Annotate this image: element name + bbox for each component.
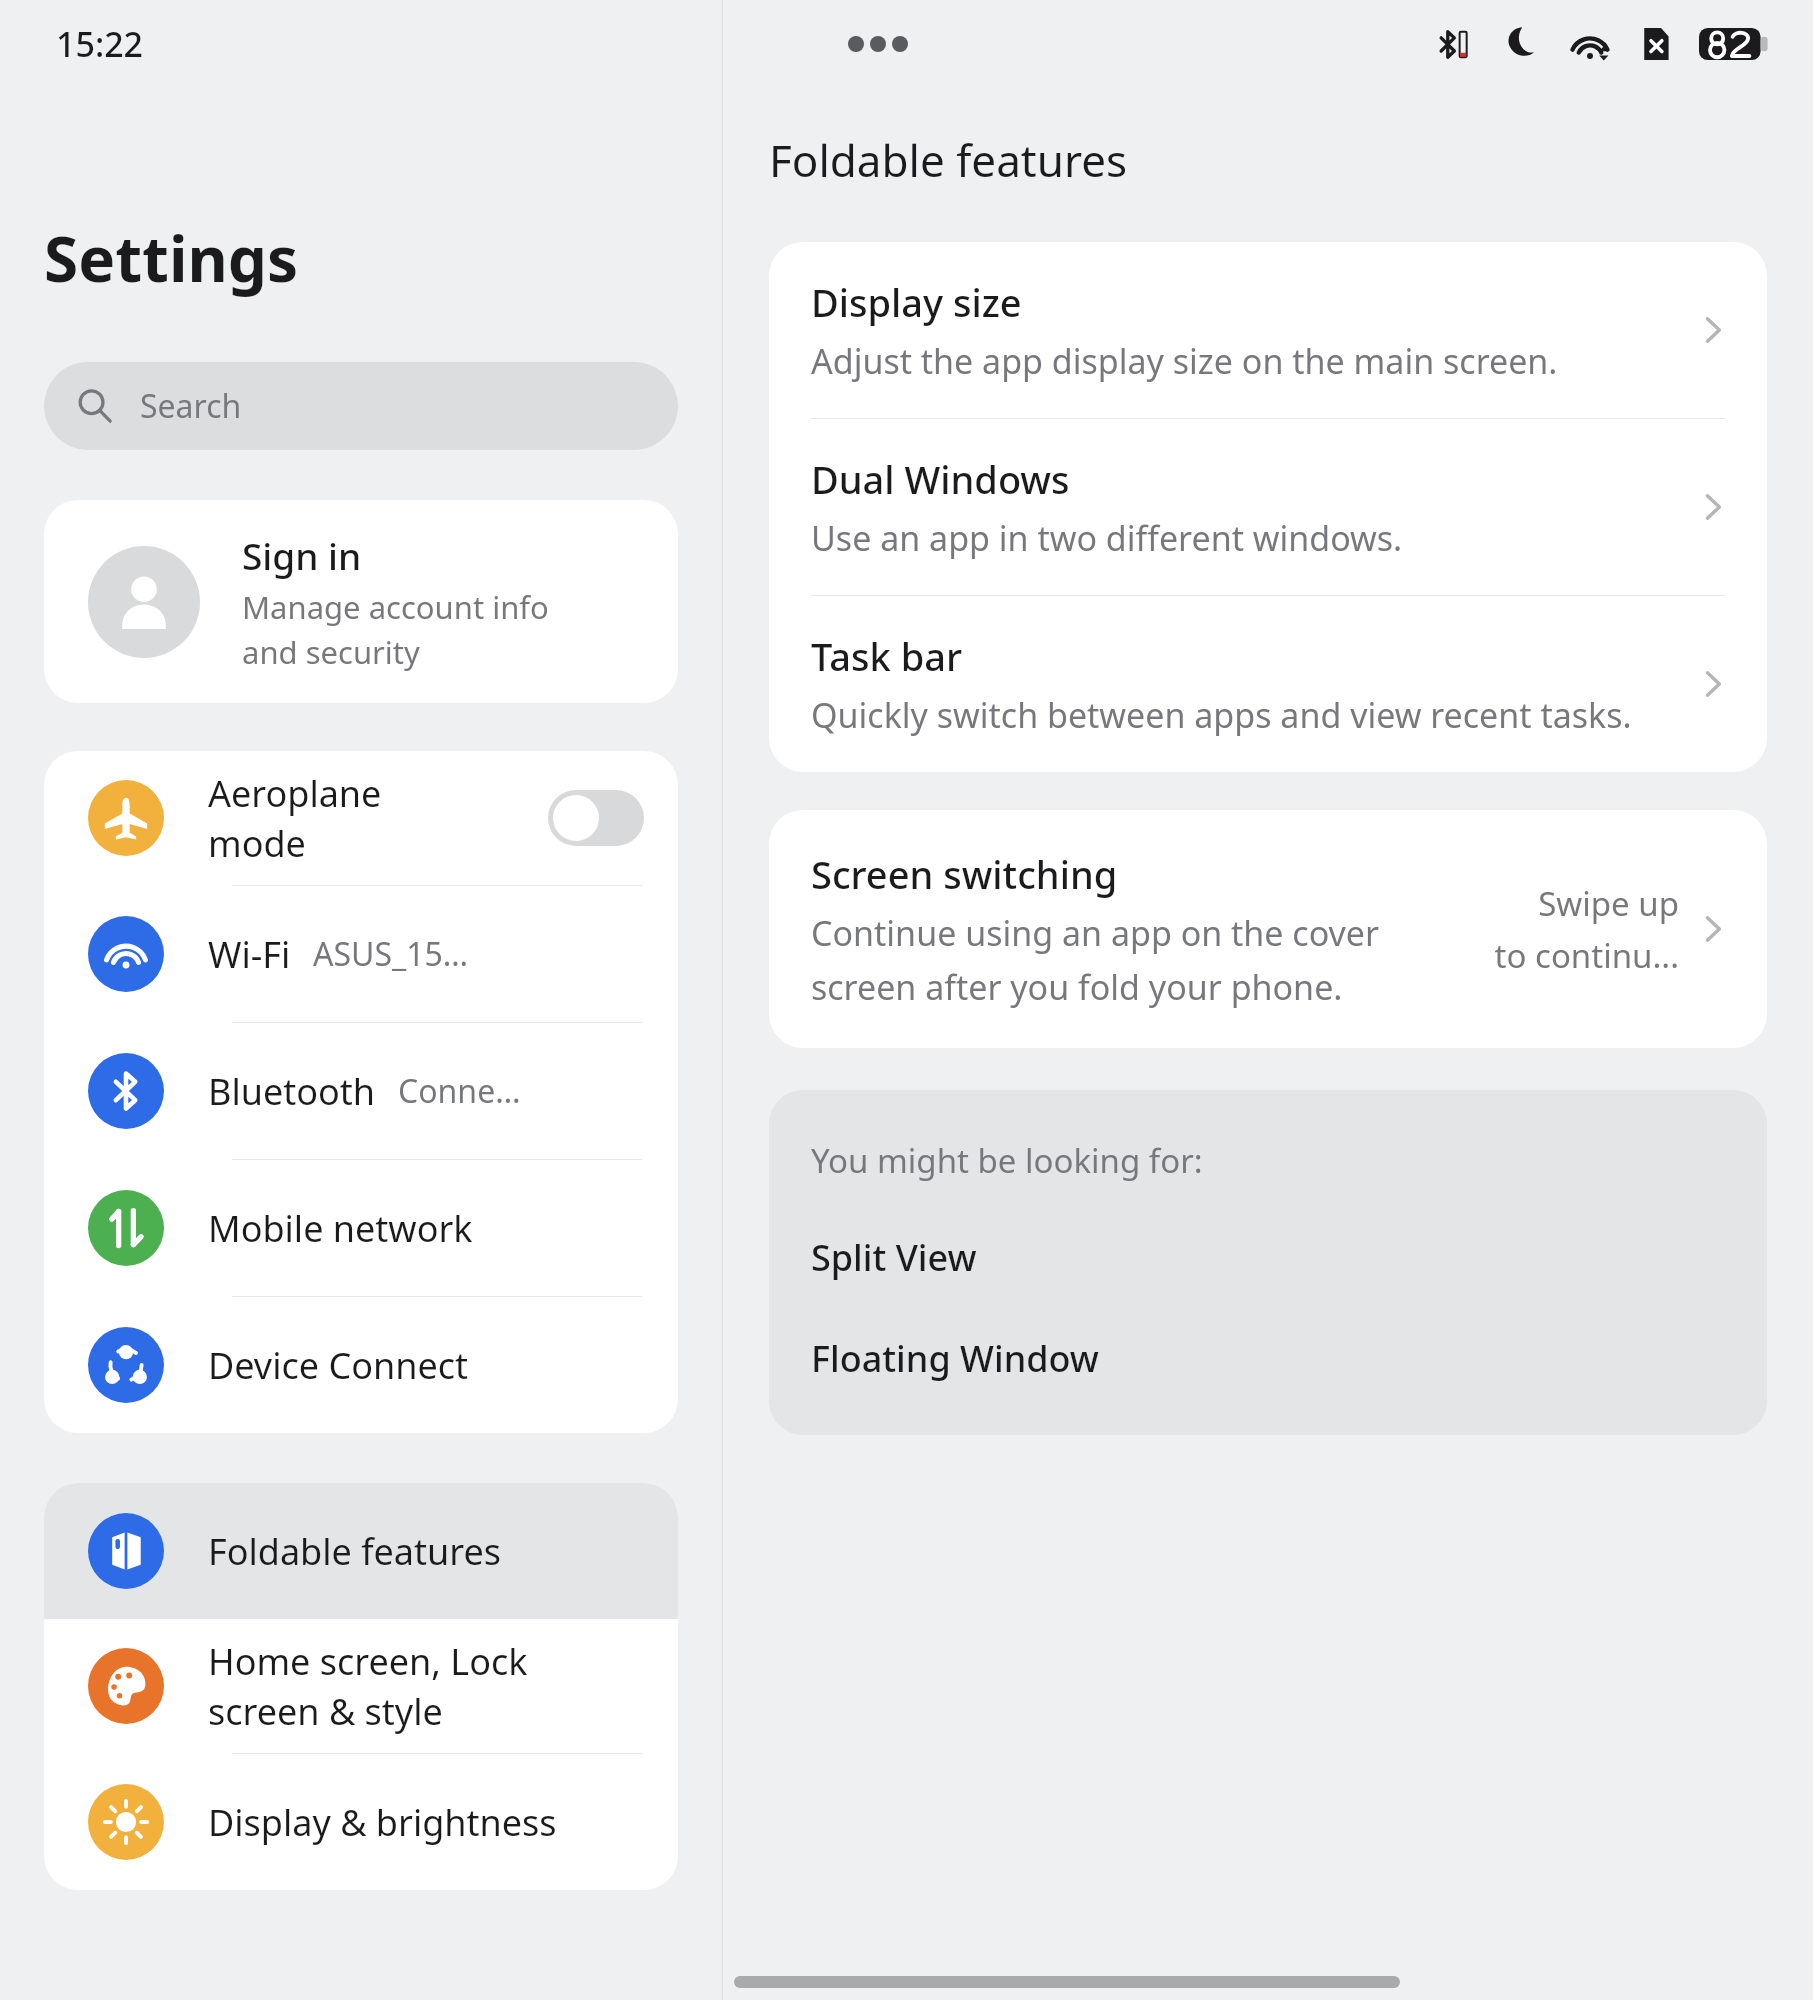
staticText: ASUS_159_WiFi7 [313,932,478,976]
button[interactable]: Floating Window [811,1334,1725,1383]
staticText: Foldable features [769,130,1128,190]
staticText: Quickly switch between apps and view rec… [811,692,1632,738]
button[interactable]: Display size [769,242,1767,418]
staticText: Display size [811,276,1022,328]
staticText: Search [140,384,242,428]
staticText: Wi-Fi [208,930,291,979]
staticText: Bluetooth [208,1067,376,1116]
staticText: 15:22 [56,21,144,67]
button[interactable]: Task bar [769,596,1767,772]
button[interactable]: Split View [811,1233,1725,1282]
staticText: Swipe up to continu... [1494,881,1679,977]
staticText: Display & brightness [208,1798,557,1847]
staticText: Adjust the app display size on the main … [811,338,1558,384]
staticText: Task bar [811,630,963,682]
button[interactable]: Display & brightness [44,1754,678,1890]
button[interactable]: Aeroplane mode [44,751,678,885]
button[interactable]: Mobile network [44,1160,678,1296]
staticText: Aeroplane mode [208,769,382,868]
button[interactable]: Search [44,362,678,450]
staticText: Manage account info and security [242,586,549,673]
button[interactable]: Screen switching [769,810,1767,1048]
staticText: Floating Window [811,1334,1099,1383]
staticText: Device Connect [208,1341,468,1390]
staticText: Continue using an app on the cover scree… [811,910,1380,1010]
button[interactable]: Foldable features [44,1483,678,1619]
button[interactable]: Device Connect [44,1297,678,1433]
staticText: Sign in [242,530,362,580]
button[interactable]: Bluetooth [44,1023,678,1159]
staticText: You might be looking for: [811,1138,1203,1183]
staticText: Mobile network [208,1204,473,1253]
button[interactable]: Sign in [44,500,678,703]
button[interactable]: Wi-Fi [44,886,678,1022]
staticText: Screen switching [811,848,1118,900]
staticText: Split View [811,1233,977,1282]
button[interactable]: Aeroplane mode toggle [548,790,644,846]
staticText: Home screen, Lock screen & style [208,1637,528,1736]
staticText: Foldable features [208,1527,502,1576]
staticText: Use an app in two different windows. [811,515,1403,561]
staticText: Settings [44,216,299,300]
button[interactable]: Home screen, Lock screen & style [44,1619,678,1753]
staticText: Dual Windows [811,453,1070,505]
button[interactable]: Dual Windows [769,419,1767,595]
staticText: Connected [398,1069,521,1113]
